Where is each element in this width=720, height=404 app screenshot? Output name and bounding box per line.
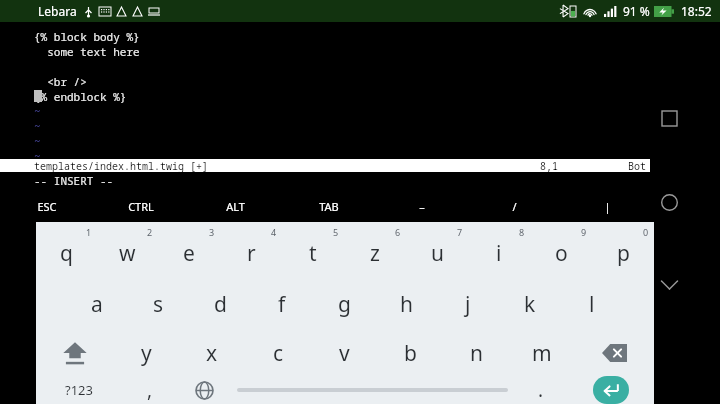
staticText: v [339, 339, 350, 368]
staticText: / [512, 199, 517, 214]
button[interactable]: Hide keyboard [659, 275, 679, 295]
button[interactable]: Shift [36, 330, 114, 376]
staticText: 2 [147, 226, 153, 238]
button[interactable]: 2 [97, 222, 158, 278]
staticText: l [589, 290, 595, 319]
staticText: some text here [34, 44, 140, 59]
staticText: , [147, 377, 153, 403]
staticText: ?123 [65, 381, 93, 399]
button[interactable]: / [468, 193, 561, 219]
button[interactable]: g [313, 278, 375, 330]
staticText: ~ [34, 118, 41, 133]
button[interactable]: 3 [158, 222, 220, 278]
staticText: 91 % [623, 3, 650, 19]
staticText: ALT [226, 199, 245, 214]
staticText: 5 [333, 226, 339, 238]
button[interactable]: l [561, 278, 623, 330]
staticText: {% endblock %} [34, 89, 127, 104]
button[interactable]: d [189, 278, 251, 330]
staticText: g [338, 290, 351, 319]
button[interactable]: Enter [593, 376, 629, 404]
staticText: w [119, 239, 136, 268]
button[interactable]: Change language [177, 376, 232, 404]
button[interactable]: ALT [188, 193, 282, 219]
button[interactable]: Backspace [575, 330, 654, 376]
staticText: k [524, 290, 536, 319]
button[interactable]: Home [659, 192, 679, 212]
staticText: p [617, 239, 630, 268]
button[interactable]: , [122, 376, 177, 404]
button[interactable]: 9 [530, 222, 592, 278]
staticText: 8 [519, 226, 525, 238]
staticText: h [400, 290, 413, 319]
button[interactable]: h [375, 278, 437, 330]
staticText: ~ [34, 133, 41, 148]
button[interactable]: Recents [659, 108, 679, 128]
button[interactable]: 7 [406, 222, 468, 278]
button[interactable]: v [311, 330, 377, 376]
staticText: q [60, 239, 73, 268]
staticText: 4 [271, 226, 277, 238]
button[interactable]: y [114, 330, 179, 376]
staticText: a [91, 290, 103, 319]
staticText: m [532, 339, 552, 368]
button[interactable]: x [179, 330, 245, 376]
staticText: i [496, 239, 502, 268]
button[interactable]: s [127, 278, 189, 330]
staticText: y [141, 339, 152, 368]
button[interactable]: 5 [282, 222, 344, 278]
staticText: Lebara [38, 3, 77, 19]
button[interactable]: 6 [344, 222, 406, 278]
staticText: ~ [34, 148, 41, 163]
button[interactable]: 4 [220, 222, 282, 278]
button[interactable]: j [437, 278, 499, 330]
staticText: <br /> [34, 74, 87, 89]
staticText: b [404, 339, 417, 368]
button[interactable]: CTRL [94, 193, 188, 219]
staticText: 7 [457, 226, 463, 238]
staticText: r [247, 239, 256, 268]
staticText: 6 [395, 226, 401, 238]
button[interactable]: TAB [282, 193, 375, 219]
button[interactable]: b [377, 330, 443, 376]
button[interactable]: | [561, 193, 654, 219]
staticText: d [214, 290, 227, 319]
staticText: ~ [34, 103, 41, 118]
button[interactable]: n [443, 330, 509, 376]
staticText: Bot [628, 159, 646, 172]
staticText: CTRL [128, 199, 154, 214]
button[interactable]: . [513, 376, 568, 404]
staticText: n [470, 339, 483, 368]
button[interactable]: m [509, 330, 575, 376]
button[interactable]: f [251, 278, 313, 330]
staticText: 9 [581, 226, 587, 238]
staticText: TAB [319, 199, 339, 214]
button[interactable]: a [66, 278, 127, 330]
button[interactable]: ESC [0, 193, 94, 219]
staticText: | [604, 199, 611, 214]
staticText: . [538, 377, 544, 403]
staticText: s [153, 290, 164, 319]
staticText: x [206, 339, 218, 368]
staticText: j [465, 290, 471, 319]
staticText: 1 [86, 226, 92, 238]
button[interactable]: – [375, 193, 468, 219]
staticText: f [278, 290, 286, 319]
staticText: c [273, 339, 284, 368]
button[interactable]: c [245, 330, 311, 376]
staticText: 3 [209, 226, 215, 238]
button[interactable]: k [499, 278, 561, 330]
button[interactable]: 0 [592, 222, 654, 278]
button[interactable]: ?123 [36, 376, 122, 404]
staticText: o [555, 239, 568, 268]
staticText: ESC [37, 199, 57, 214]
staticText: e [183, 239, 195, 268]
button[interactable]: 8 [468, 222, 530, 278]
staticText: 8,1 [540, 159, 558, 172]
staticText: u [431, 239, 444, 268]
staticText: z [370, 239, 380, 268]
staticText: templates/index.html.twig [+] [34, 159, 208, 172]
button[interactable]: 1 [36, 222, 97, 278]
staticText: 18:52 [681, 3, 712, 19]
